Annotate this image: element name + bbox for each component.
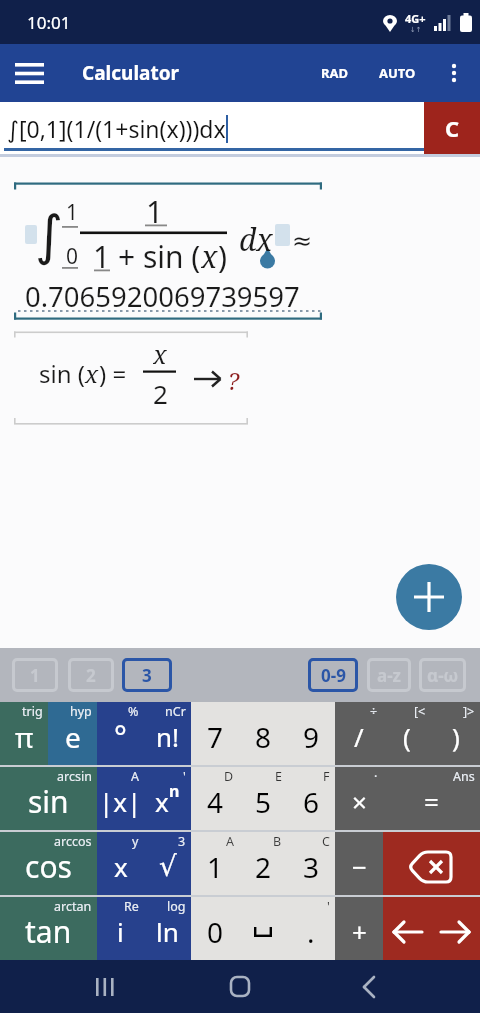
- staticText: tan: [25, 911, 72, 952]
- button[interactable]: hyp: [48, 702, 97, 765]
- staticText: i: [117, 914, 124, 949]
- button[interactable]: [343, 960, 395, 1013]
- button[interactable]: [396, 564, 462, 630]
- staticText: √: [159, 850, 177, 883]
- staticText: =: [424, 784, 439, 819]
- button[interactable]: [80, 960, 132, 1013]
- button[interactable]: y: [97, 832, 144, 895]
- staticText: 2: [86, 664, 96, 687]
- button[interactable]: RAD: [315, 58, 355, 88]
- button[interactable]: a-z: [367, 658, 411, 692]
- button[interactable]: A: [97, 767, 144, 830]
- button[interactable]: arctan: [0, 897, 97, 960]
- staticText: ↓↑: [410, 26, 422, 34]
- button[interactable]: [428, 44, 480, 102]
- staticText: 8: [255, 718, 272, 756]
- button[interactable]: [383, 897, 431, 960]
- staticText: A: [131, 768, 139, 785]
- staticText: (: [403, 719, 411, 754]
- staticText: 10:01: [27, 11, 71, 34]
- button[interactable]: −: [335, 832, 383, 895]
- staticText: hyp: [70, 703, 92, 720]
- button[interactable]: 8: [239, 702, 287, 765]
- button[interactable]: C: [424, 102, 480, 154]
- button[interactable]: %: [97, 702, 144, 765]
- button[interactable]: log: [144, 897, 191, 960]
- button[interactable]: [431, 897, 480, 960]
- staticText: −: [352, 849, 367, 884]
- staticText: +: [352, 914, 367, 949]
- staticText: 0-9: [321, 664, 346, 687]
- staticText: 0: [207, 913, 224, 951]
- button[interactable]: E: [239, 767, 287, 830]
- staticText: 3: [142, 664, 152, 687]
- staticText: Re: [124, 898, 139, 915]
- button[interactable]: 9: [287, 702, 335, 765]
- staticText: arccos: [54, 833, 92, 850]
- button[interactable]: [383, 832, 480, 895]
- button[interactable]: [214, 960, 266, 1013]
- button[interactable]: arccos: [0, 832, 97, 895]
- staticText: /: [354, 719, 364, 754]
- button[interactable]: C: [287, 832, 335, 895]
- staticText: ∫: [35, 204, 64, 267]
- staticText: 6: [303, 783, 320, 821]
- button[interactable]: 7: [191, 702, 239, 765]
- staticText: RAD: [321, 64, 349, 82]
- staticText: ): [452, 719, 460, 754]
- staticText: °: [114, 716, 127, 757]
- button[interactable]: [0, 44, 58, 102]
- staticText: dx: [239, 219, 273, 257]
- staticText: 1: [30, 664, 40, 687]
- staticText: log: [167, 898, 186, 915]
- button[interactable]: α-ω: [419, 658, 466, 692]
- button[interactable]: Ans: [383, 767, 480, 830]
- button[interactable]: nCr: [144, 702, 191, 765]
- staticText: 3: [178, 833, 186, 850]
- staticText: trig: [22, 703, 43, 720]
- staticText: ': [183, 768, 186, 785]
- button[interactable]: ': [144, 767, 191, 830]
- button[interactable]: AUTO: [373, 58, 422, 88]
- button[interactable]: 1: [12, 658, 58, 692]
- staticText: A: [226, 833, 234, 850]
- button[interactable]: ÷: [335, 702, 383, 765]
- staticText: 5: [255, 783, 272, 821]
- staticText: α-ω: [427, 664, 459, 687]
- staticText: ∫[0,1](1/(1+sin(x)))dx: [7, 113, 226, 144]
- button[interactable]: 0: [191, 897, 239, 960]
- button[interactable]: ·: [335, 767, 383, 830]
- button[interactable]: 0-9: [308, 658, 358, 692]
- button[interactable]: ∫[0,1](1/(1+sin(x)))dx: [0, 102, 424, 154]
- staticText: 4G+: [405, 11, 426, 26]
- staticText: 1: [207, 848, 224, 886]
- button[interactable]: D: [191, 767, 239, 830]
- staticText: x: [85, 357, 99, 390]
- button[interactable]: 3: [144, 832, 191, 895]
- button[interactable]: trig: [0, 702, 48, 765]
- staticText: ]>: [463, 703, 475, 720]
- button[interactable]: [239, 897, 287, 960]
- staticText: 0: [66, 242, 79, 270]
- staticText: E: [275, 768, 282, 785]
- button[interactable]: [<: [383, 702, 431, 765]
- button[interactable]: arcsin: [0, 767, 97, 830]
- button[interactable]: ': [287, 897, 335, 960]
- staticText: F: [323, 768, 330, 785]
- button[interactable]: 2: [68, 658, 114, 692]
- staticText: |x|: [99, 784, 142, 819]
- staticText: x: [201, 236, 218, 274]
- staticText: ·: [374, 768, 378, 785]
- staticText: 1 + sin (: [93, 236, 201, 274]
- button[interactable]: 3: [122, 658, 172, 692]
- staticText: AUTO: [379, 64, 416, 82]
- staticText: x: [155, 784, 169, 819]
- staticText: Calculator: [82, 60, 180, 86]
- button[interactable]: +: [335, 897, 383, 960]
- button[interactable]: ]>: [431, 702, 480, 765]
- button[interactable]: F: [287, 767, 335, 830]
- button[interactable]: B: [239, 832, 287, 895]
- button[interactable]: A: [191, 832, 239, 895]
- button[interactable]: Re: [97, 897, 144, 960]
- staticText: 7: [207, 718, 224, 756]
